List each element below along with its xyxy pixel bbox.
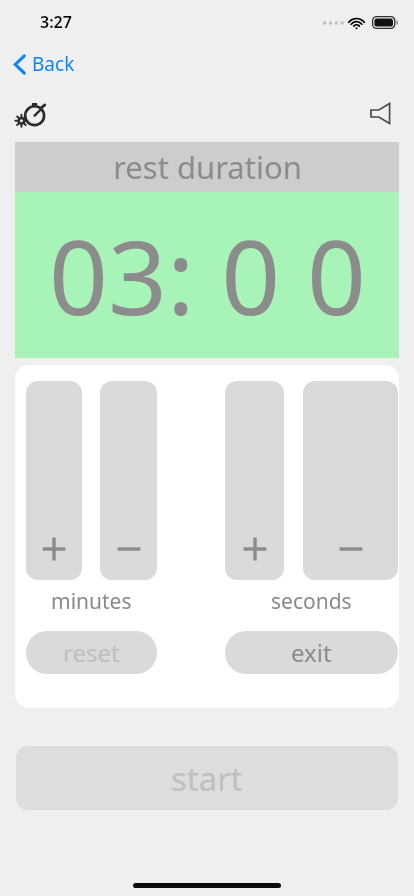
button[interactable]: Remove minute: [100, 381, 157, 580]
staticText: start: [171, 756, 243, 801]
button[interactable]: Sound: [358, 90, 404, 136]
staticText: 03: 0 0: [49, 205, 366, 345]
button[interactable]: Add second: [225, 381, 284, 580]
button[interactable]: start: [16, 746, 398, 810]
staticText: reset: [63, 636, 120, 669]
button[interactable]: Remove second: [303, 381, 398, 580]
button[interactable]: Back: [8, 44, 81, 84]
button[interactable]: Timer settings: [8, 90, 54, 136]
staticText: rest duration: [113, 146, 302, 188]
staticText: minutes: [51, 587, 132, 616]
staticText: seconds: [271, 587, 352, 616]
button[interactable]: reset: [26, 631, 157, 674]
staticText: 3:27: [40, 11, 72, 33]
button[interactable]: Add minute: [26, 381, 82, 580]
button[interactable]: exit: [225, 631, 398, 674]
staticText: exit: [291, 636, 332, 669]
staticText: Back: [32, 51, 75, 77]
